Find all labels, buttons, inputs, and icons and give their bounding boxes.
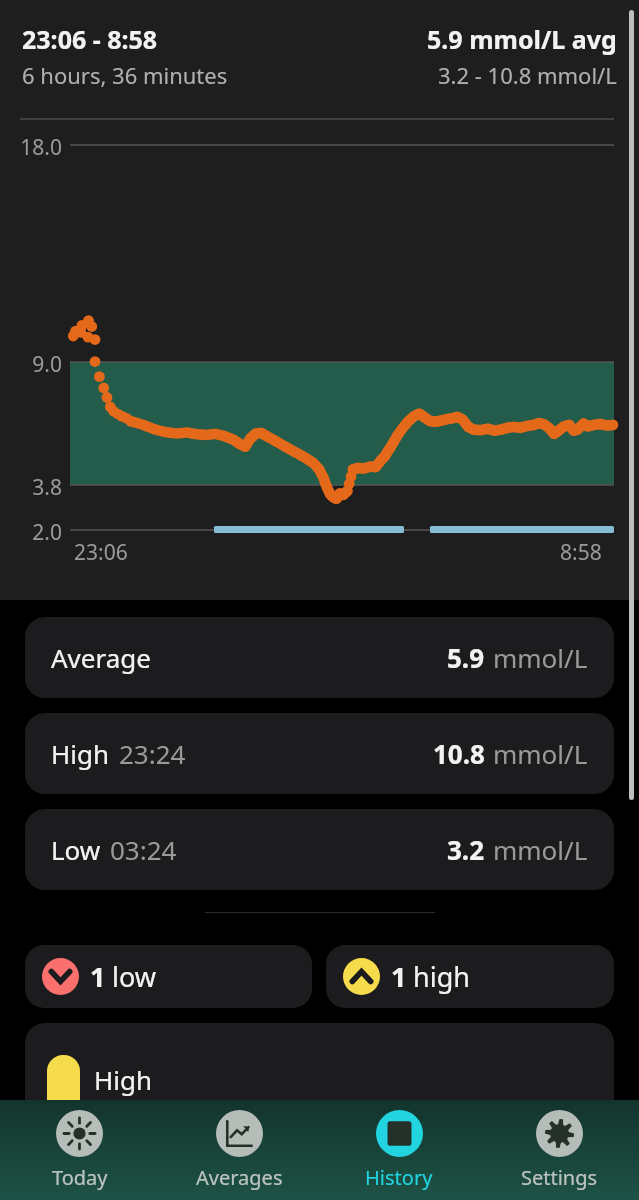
staticText: High (94, 1062, 153, 1097)
staticText: mmol/L (493, 832, 588, 867)
staticText: 18.0 (20, 133, 62, 162)
button[interactable]: High (25, 713, 614, 794)
staticText: 23:24 (119, 736, 186, 771)
staticText: Today (52, 1164, 108, 1191)
staticText: Averages (196, 1164, 283, 1191)
staticText: Average (51, 640, 151, 675)
staticText: mmol/L (493, 736, 588, 771)
staticText: 1 (391, 958, 407, 995)
staticText: 10.8 (433, 736, 485, 771)
staticText: 3.8 (32, 473, 62, 502)
button[interactable]: Averages (159, 1100, 319, 1200)
button[interactable]: History (319, 1100, 479, 1200)
staticText: History (365, 1164, 433, 1191)
staticText: 8:58 (560, 538, 602, 567)
staticText: 9.0 (32, 350, 62, 379)
staticText: mmol/L (493, 640, 588, 675)
button[interactable]: Low (25, 809, 614, 890)
staticText: 1 (90, 958, 106, 995)
button[interactable]: 1 (326, 945, 614, 1008)
button[interactable]: Today (0, 1100, 159, 1200)
staticText: 03:24 (110, 832, 177, 867)
button[interactable]: Average (25, 617, 614, 698)
staticText: 6 hours, 36 minutes (22, 60, 228, 90)
staticText: Low (51, 832, 101, 867)
staticText: 3.2 - 10.8 mmol/L (438, 60, 617, 90)
staticText: 5.9 mmol/L avg (427, 22, 617, 56)
staticText: 5.9 (447, 640, 485, 675)
staticText: 23:06 - 8:58 (22, 22, 158, 56)
button[interactable]: High (25, 1023, 614, 1103)
staticText: low (112, 958, 156, 995)
staticText: 23:06 (74, 538, 128, 567)
button[interactable]: Settings (479, 1100, 639, 1200)
button[interactable]: 1 (25, 945, 312, 1008)
staticText: Settings (521, 1164, 598, 1191)
staticText: high (413, 958, 470, 995)
staticText: High (51, 736, 110, 771)
staticText: 3.2 (447, 832, 485, 867)
staticText: 2.0 (32, 518, 62, 547)
